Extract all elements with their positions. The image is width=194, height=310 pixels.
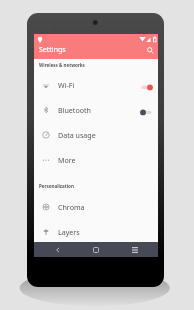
staticText: Settings [39,45,66,55]
button[interactable]: Wi-Fi [34,72,158,97]
button[interactable]: Home [81,242,111,257]
button[interactable]: Recent apps [120,242,150,257]
button[interactable]: Data usage [34,122,158,147]
button[interactable]: Search [142,42,158,58]
button[interactable]: Bluetooth [34,97,158,122]
staticText: Wireless & networks [39,62,85,68]
staticText: Wi-Fi [58,80,75,90]
button[interactable]: Back [43,242,73,257]
staticText: More [58,155,76,165]
staticText: Data usage [58,130,96,140]
button[interactable]: Chroma [34,194,158,219]
staticText: Chroma [58,202,85,212]
staticText: Personalization [39,183,74,189]
staticText: Bluetooth [58,105,91,115]
staticText: Layers [58,227,80,237]
button[interactable]: Layers [34,219,158,244]
button[interactable]: More [34,147,158,172]
